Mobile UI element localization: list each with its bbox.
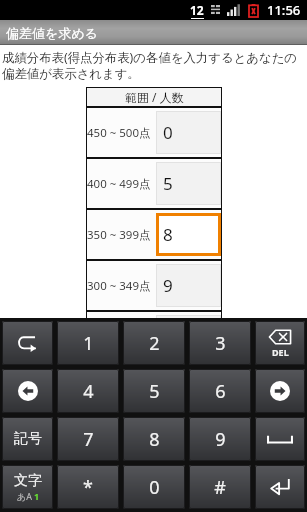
staticText: 文字 <box>14 472 42 490</box>
button[interactable]: 8 <box>123 417 185 461</box>
button[interactable]: 0 <box>123 465 185 509</box>
staticText: 350 ~ 399点 <box>87 227 156 243</box>
button[interactable]: 9 <box>156 264 221 307</box>
staticText: 450 ~ 500点 <box>87 125 156 141</box>
staticText: 9 <box>215 427 226 452</box>
staticText: # <box>214 475 226 500</box>
staticText: 範囲 / 人数 <box>125 89 184 105</box>
staticText: あA <box>17 490 32 502</box>
button[interactable]: 元に戻す <box>2 321 53 365</box>
staticText: 0 <box>163 121 173 144</box>
button[interactable]: 4 <box>57 369 119 413</box>
button[interactable]: 450 ~ 500点 <box>86 107 222 158</box>
button[interactable]: 1 <box>57 321 119 365</box>
button[interactable]: 決定 <box>255 465 305 509</box>
staticText: 5 <box>149 379 160 404</box>
staticText: 17 <box>163 325 183 348</box>
staticText: 0 <box>149 475 160 500</box>
staticText: 2 <box>149 331 160 356</box>
button[interactable]: 350 ~ 399点 <box>86 209 222 260</box>
staticText: 1 <box>83 331 94 356</box>
button[interactable]: 右 <box>255 369 305 413</box>
button[interactable]: * <box>57 465 119 509</box>
button[interactable]: 記号 <box>2 417 53 461</box>
button[interactable]: 5 <box>123 369 185 413</box>
staticText: 300 ~ 349点 <box>87 278 156 294</box>
button[interactable]: 5 <box>156 162 221 205</box>
staticText: 11:56 <box>267 1 301 19</box>
staticText: 9 <box>163 274 173 297</box>
button[interactable]: 9 <box>189 417 251 461</box>
staticText: 3 <box>215 331 226 356</box>
button[interactable]: 6 <box>189 369 251 413</box>
button[interactable]: スペース <box>255 417 305 461</box>
staticText: 250 ~ 299点 <box>87 329 156 345</box>
button[interactable]: 2 <box>123 321 185 365</box>
staticText: 400 ~ 499点 <box>87 176 156 192</box>
staticText: 5 <box>163 172 173 195</box>
button[interactable]: # <box>189 465 251 509</box>
button[interactable]: 文字 <box>2 465 53 509</box>
staticText: 12 <box>190 2 204 18</box>
button[interactable]: 300 ~ 349点 <box>86 260 222 311</box>
staticText: * <box>83 475 93 500</box>
staticText: 記号 <box>14 430 42 448</box>
button[interactable]: 400 ~ 499点 <box>86 158 222 209</box>
button[interactable]: 250 ~ 299点 <box>86 311 222 362</box>
staticText: 成績分布表(得点分布表)の各値を入力するとあなたの偏差値が表示されます。 <box>2 49 305 82</box>
button[interactable]: 0 <box>156 111 221 154</box>
staticText: 7 <box>83 427 94 452</box>
staticText: 8 <box>163 223 173 246</box>
staticText: 6 <box>215 379 226 404</box>
staticText: DEL <box>272 346 289 358</box>
button[interactable]: 左 <box>2 369 53 413</box>
staticText: 1 <box>34 490 40 502</box>
staticText: 4 <box>83 379 94 404</box>
staticText: 偏差値を求める <box>6 25 98 41</box>
button[interactable]: 7 <box>57 417 119 461</box>
button[interactable]: 8 <box>156 213 221 256</box>
button[interactable]: 17 <box>156 315 221 358</box>
button[interactable]: 削除 <box>255 321 305 365</box>
staticText: 8 <box>149 427 160 452</box>
button[interactable]: 3 <box>189 321 251 365</box>
